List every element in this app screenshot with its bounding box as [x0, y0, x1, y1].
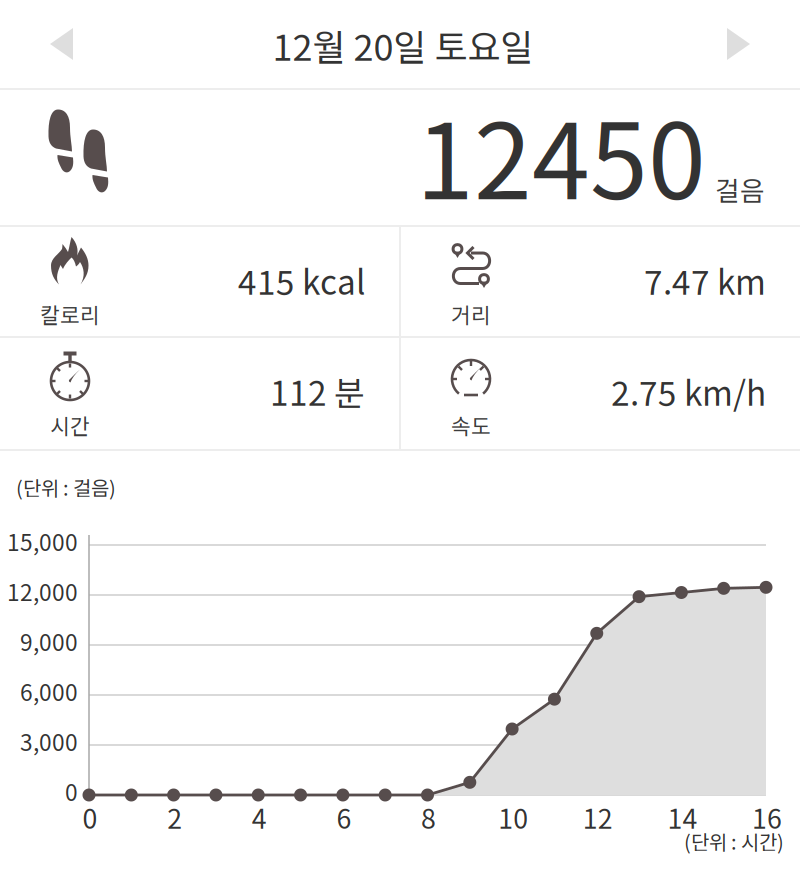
staticText: 0 [82, 798, 97, 836]
staticText: 걸음 [715, 170, 765, 208]
button[interactable]: 속도 [401, 338, 800, 449]
staticText: 시간 [50, 410, 90, 440]
staticText: 16 [752, 798, 782, 836]
staticText: 415 kcal [238, 256, 365, 304]
button[interactable]: Previous day [0, 0, 124, 88]
staticText: 12,000 [7, 575, 78, 607]
button[interactable]: 칼로리 [0, 227, 399, 336]
staticText: 12월 20일 토요일 [272, 19, 533, 71]
button[interactable]: 시간 [0, 338, 399, 449]
staticText: 칼로리 [40, 299, 100, 329]
button[interactable]: 12450 [0, 90, 800, 225]
staticText: (단위 : 시간) [684, 826, 784, 855]
staticText: 0 [65, 775, 78, 807]
staticText: 6 [336, 798, 351, 836]
staticText: 3,000 [20, 725, 78, 757]
button[interactable]: 거리 [401, 227, 800, 336]
staticText: 4 [252, 798, 267, 836]
staticText: 2.75 km/h [611, 367, 766, 415]
staticText: 거리 [451, 299, 491, 329]
staticText: 12 [583, 798, 613, 836]
staticText: 9,000 [20, 625, 78, 657]
staticText: 12450 [416, 79, 706, 229]
staticText: 8 [421, 798, 436, 836]
staticText: (단위 : 걸음) [16, 472, 116, 501]
staticText: 112 분 [270, 367, 365, 415]
staticText: 10 [498, 798, 528, 836]
staticText: 15,000 [7, 525, 78, 557]
staticText: 14 [667, 798, 697, 836]
staticText: 6,000 [20, 675, 78, 707]
staticText: 2 [167, 798, 182, 836]
staticText: 속도 [451, 410, 491, 440]
button[interactable]: Next day [676, 0, 800, 88]
staticText: 7.47 km [644, 256, 766, 304]
